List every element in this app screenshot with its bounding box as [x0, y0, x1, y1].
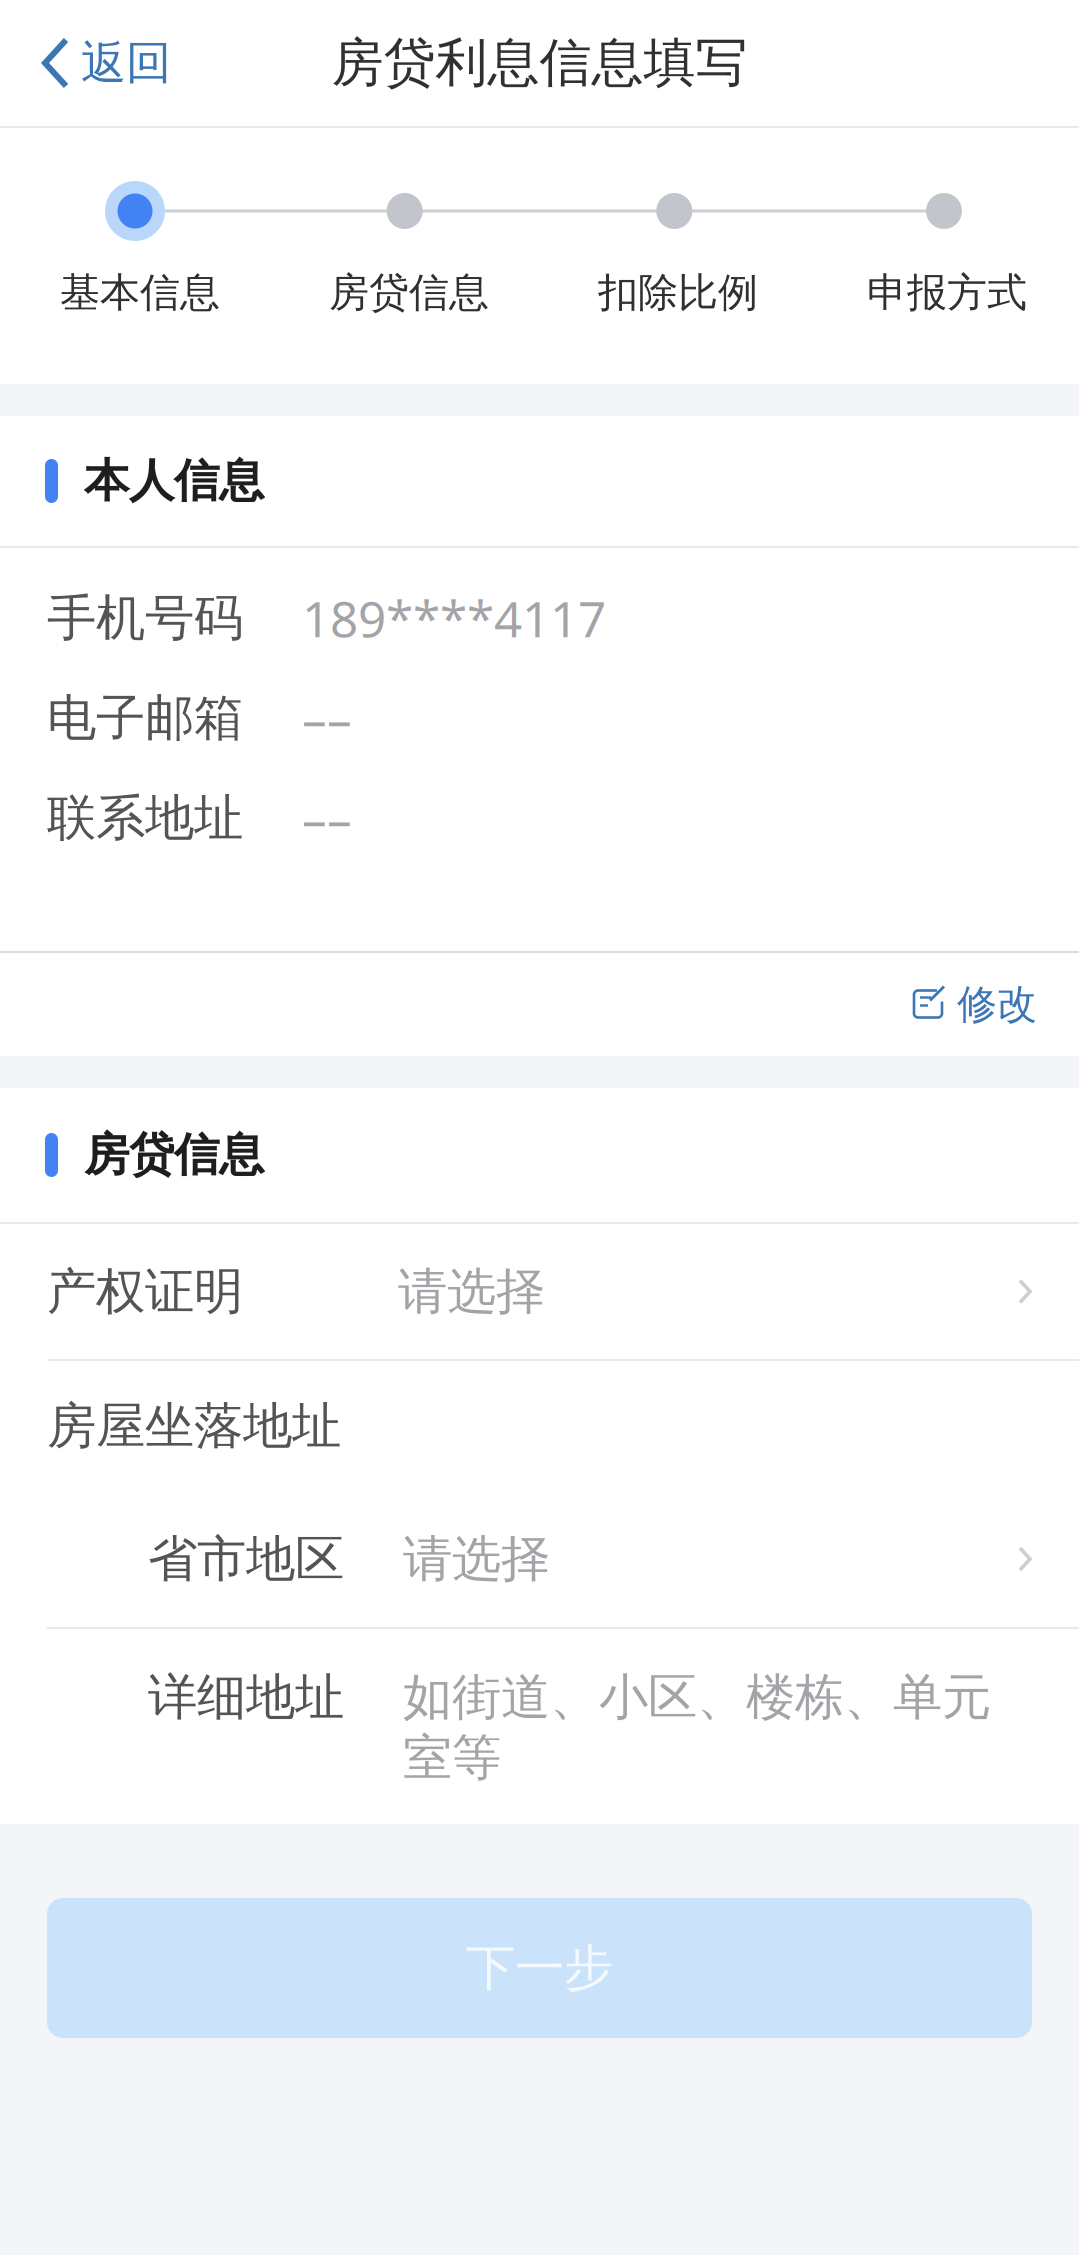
staticText: 189****4117	[302, 585, 606, 651]
staticText: 产权证明	[47, 1261, 243, 1322]
button[interactable]: 返回	[0, 0, 195, 126]
staticText: 扣除比例	[598, 268, 758, 317]
staticText: 基本信息	[60, 268, 220, 317]
staticText: 修改	[957, 980, 1037, 1029]
staticText: 如街道、小区、楼栋、单元室等	[403, 1667, 991, 1788]
staticText: 返回	[81, 35, 171, 91]
button[interactable]: 省市地区	[0, 1491, 1079, 1627]
button[interactable]: 产权证明	[0, 1224, 1079, 1359]
staticText: 请选择	[403, 1529, 550, 1589]
button[interactable]: 修改	[0, 953, 1079, 1056]
staticText: 联系地址	[47, 788, 243, 848]
staticText: 手机号码	[47, 588, 243, 648]
staticText: 电子邮箱	[47, 688, 243, 748]
staticText: 下一步	[466, 1938, 613, 1998]
button[interactable]: 下一步	[47, 1898, 1032, 2038]
staticText: 申报方式	[867, 268, 1027, 317]
staticText: 房贷信息	[84, 1127, 264, 1183]
staticText: 房贷信息	[329, 268, 489, 317]
staticText: 请选择	[398, 1261, 545, 1322]
staticText: 详细地址	[148, 1667, 344, 1728]
staticText: ––	[302, 785, 352, 851]
staticText: 本人信息	[84, 453, 264, 509]
staticText: 房屋坐落地址	[47, 1396, 341, 1456]
staticText: ––	[302, 685, 352, 751]
staticText: 房贷利息信息填写	[331, 31, 747, 95]
staticText: 省市地区	[148, 1529, 344, 1589]
